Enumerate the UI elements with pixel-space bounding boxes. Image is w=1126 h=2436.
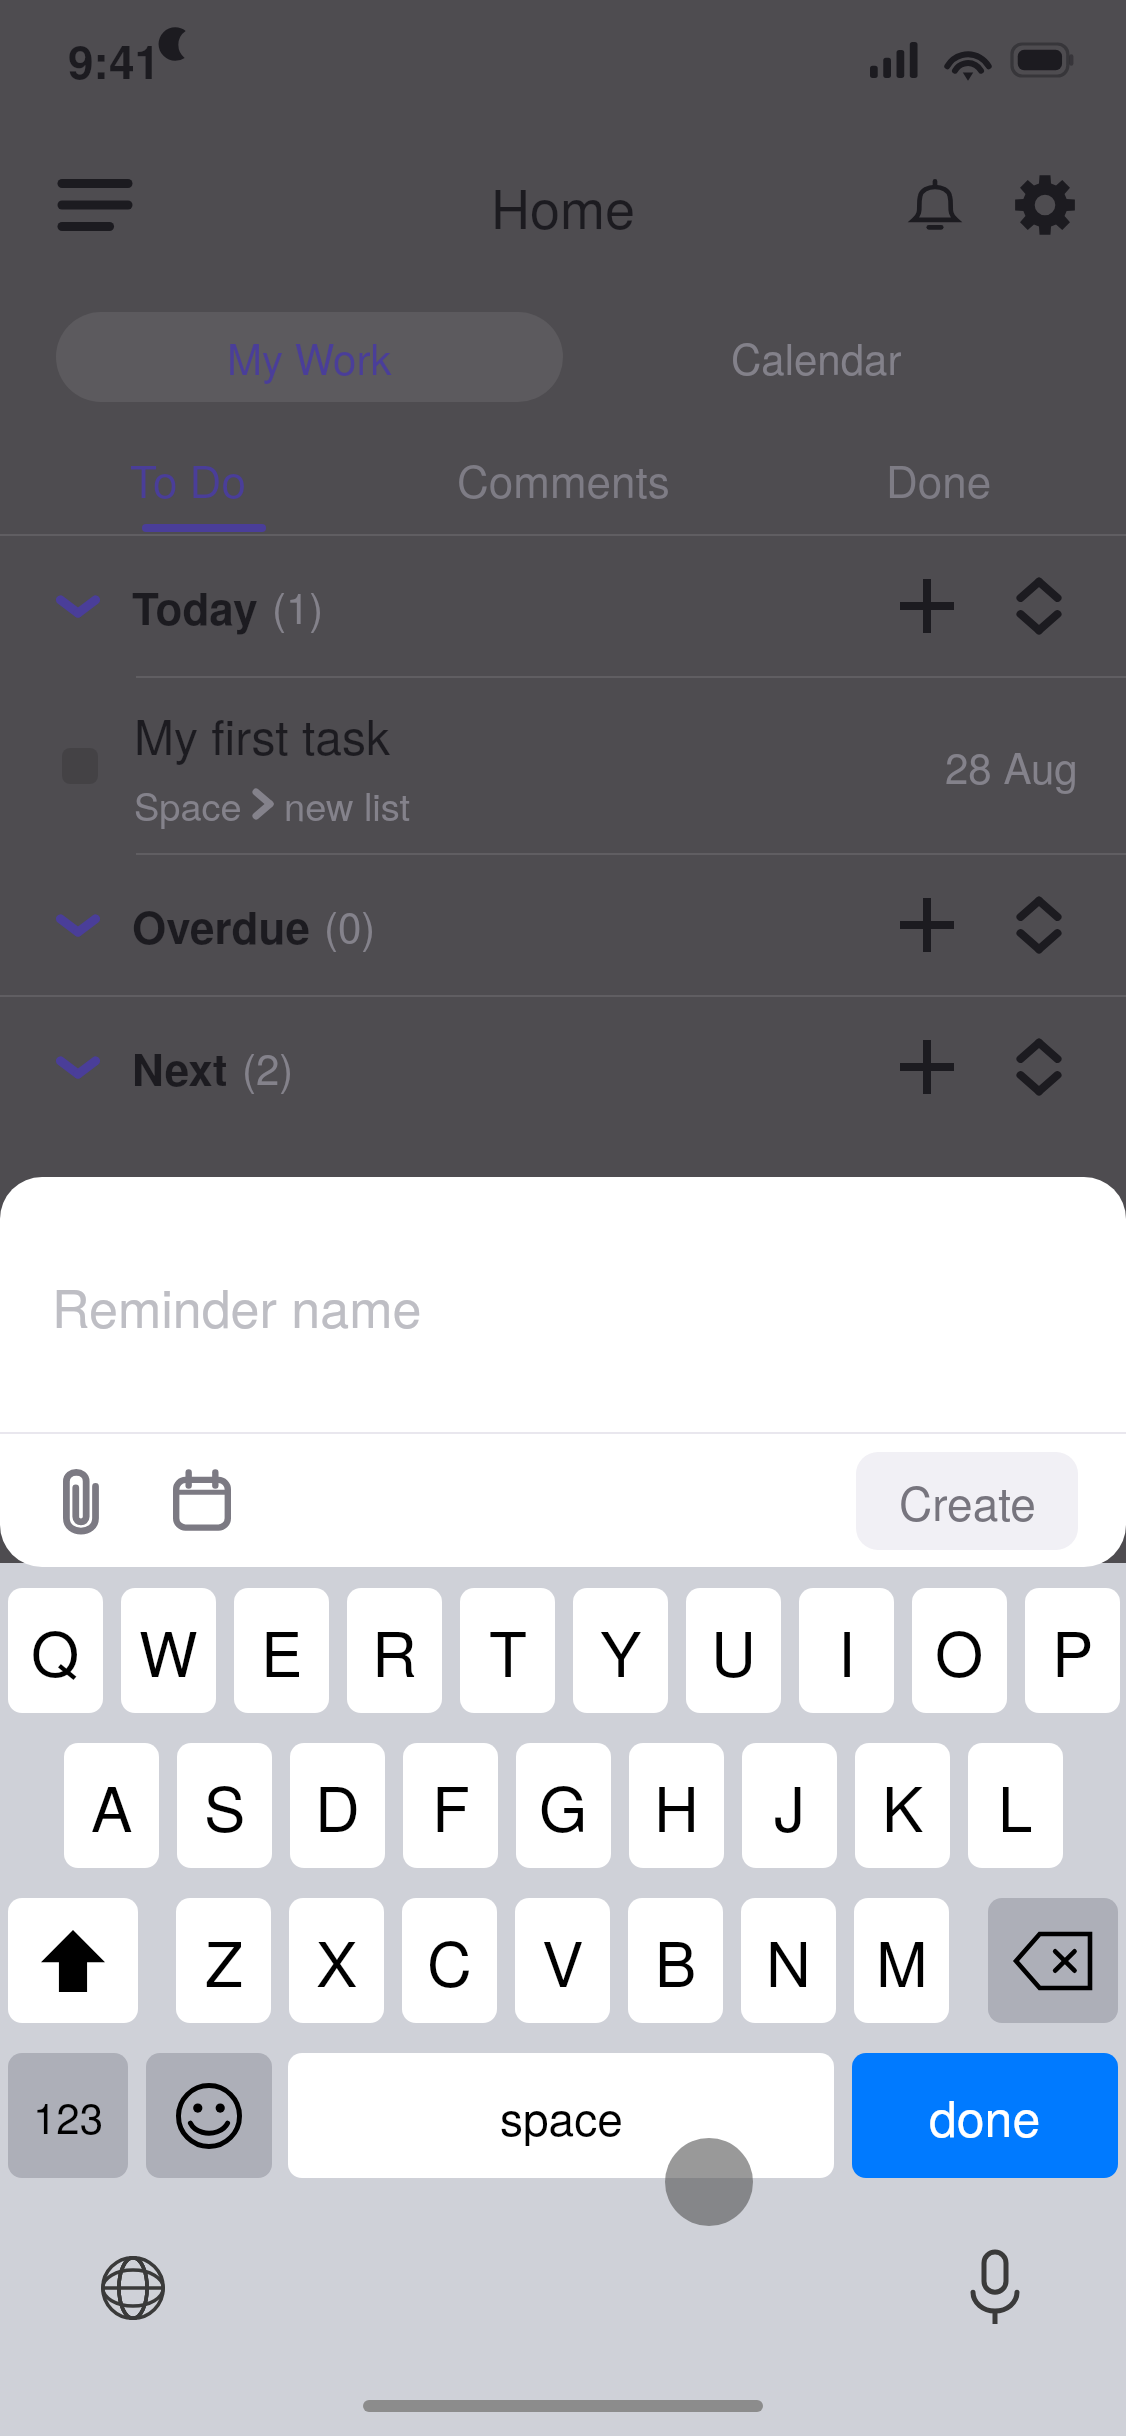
button[interactable]: H (629, 1743, 724, 1868)
button[interactable]: Notifications (880, 150, 990, 260)
button[interactable]: Dictate (950, 2243, 1040, 2333)
button[interactable]: Done (751, 432, 1126, 524)
button[interactable]: Create (856, 1452, 1078, 1550)
staticText: K (882, 1761, 924, 1850)
staticText: P (1052, 1606, 1094, 1695)
button[interactable]: J (742, 1743, 837, 1868)
button[interactable]: Sort (994, 1022, 1084, 1112)
button[interactable]: P (1025, 1588, 1120, 1713)
button[interactable]: I (799, 1588, 894, 1713)
button[interactable]: V (515, 1898, 610, 2023)
staticText: space (500, 2083, 623, 2149)
staticText: Create (899, 1468, 1036, 1534)
staticText: (0) (324, 895, 376, 955)
button[interactable]: A (64, 1743, 159, 1868)
button[interactable]: Calendar (563, 312, 1070, 402)
button[interactable]: Add task (882, 561, 972, 651)
staticText: (1) (272, 576, 324, 636)
staticText: I (838, 1606, 856, 1695)
staticText: Reminder name (52, 1268, 422, 1342)
staticText: M (876, 1916, 928, 2005)
button[interactable]: K (855, 1743, 950, 1868)
staticText: Next (132, 1036, 228, 1099)
staticText: Done (886, 447, 992, 510)
button[interactable]: C (402, 1898, 497, 2023)
button[interactable]: U (686, 1588, 781, 1713)
button[interactable]: N (741, 1898, 836, 2023)
button[interactable]: W (121, 1588, 216, 1713)
staticText: R (372, 1606, 417, 1695)
button[interactable]: Sort (994, 561, 1084, 651)
staticText: new list (284, 777, 411, 831)
button[interactable]: done (852, 2053, 1118, 2178)
button[interactable]: Sort (994, 880, 1084, 970)
button[interactable]: Today (0, 536, 1126, 676)
staticText: Calendar (731, 327, 902, 387)
button[interactable]: Q (8, 1588, 103, 1713)
staticText: 123 (33, 2086, 104, 2146)
button[interactable]: Menu (40, 150, 150, 260)
staticText: T (489, 1606, 527, 1695)
staticText: Home (491, 167, 636, 244)
staticText: D (315, 1761, 360, 1850)
button[interactable]: X (289, 1898, 384, 2023)
staticText: S (204, 1761, 246, 1850)
staticText: My first task (134, 700, 391, 769)
staticText: L (998, 1761, 1033, 1850)
button[interactable]: L (968, 1743, 1063, 1868)
button[interactable]: Z (176, 1898, 271, 2023)
staticText: Space (134, 777, 242, 831)
staticText: Overdue (132, 894, 310, 957)
staticText: Y (600, 1606, 642, 1695)
button[interactable]: Change keyboard (88, 2243, 178, 2333)
button[interactable]: Comments (376, 432, 751, 524)
staticText: done (929, 2080, 1041, 2152)
staticText: X (316, 1916, 358, 2005)
staticText: J (774, 1761, 806, 1850)
button[interactable]: E (234, 1588, 329, 1713)
button[interactable]: B (628, 1898, 723, 2023)
staticText: (2) (242, 1037, 294, 1097)
staticText: To Do (130, 447, 246, 510)
staticText: W (139, 1606, 198, 1695)
staticText: Z (205, 1916, 243, 2005)
staticText: 9:41 (68, 27, 161, 93)
button[interactable]: Next (0, 997, 1126, 1137)
staticText: Q (31, 1606, 80, 1695)
staticText: Today (132, 575, 258, 638)
button[interactable]: Set date (160, 1459, 244, 1543)
button[interactable]: My first task (0, 678, 1126, 853)
staticText: O (935, 1606, 984, 1695)
button[interactable]: My Work (56, 312, 563, 402)
button[interactable]: Y (573, 1588, 668, 1713)
button[interactable] (988, 1898, 1118, 2023)
staticText: V (542, 1916, 584, 2005)
staticText: Comments (457, 447, 670, 510)
staticText: E (261, 1606, 303, 1695)
staticText: B (655, 1916, 697, 2005)
button[interactable]: G (516, 1743, 611, 1868)
staticText: H (654, 1761, 699, 1850)
staticText: U (711, 1606, 756, 1695)
button[interactable] (146, 2053, 272, 2178)
button[interactable]: M (854, 1898, 949, 2023)
button[interactable]: O (912, 1588, 1007, 1713)
staticText: 28 Aug (945, 736, 1078, 796)
staticText: My Work (227, 327, 392, 387)
button[interactable]: space (288, 2053, 834, 2178)
button[interactable]: T (460, 1588, 555, 1713)
button[interactable]: Add task (882, 1022, 972, 1112)
button[interactable]: Settings (990, 150, 1100, 260)
button[interactable]: D (290, 1743, 385, 1868)
staticText: G (539, 1761, 588, 1850)
button[interactable]: Add task (882, 880, 972, 970)
button[interactable]: 123 (8, 2053, 128, 2178)
button[interactable]: Attach (40, 1459, 124, 1543)
button[interactable]: Overdue (0, 855, 1126, 995)
button[interactable]: S (177, 1743, 272, 1868)
button[interactable] (8, 1898, 138, 2023)
button[interactable]: F (403, 1743, 498, 1868)
button[interactable]: R (347, 1588, 442, 1713)
button[interactable]: To Do (0, 432, 376, 524)
staticText: C (427, 1916, 472, 2005)
